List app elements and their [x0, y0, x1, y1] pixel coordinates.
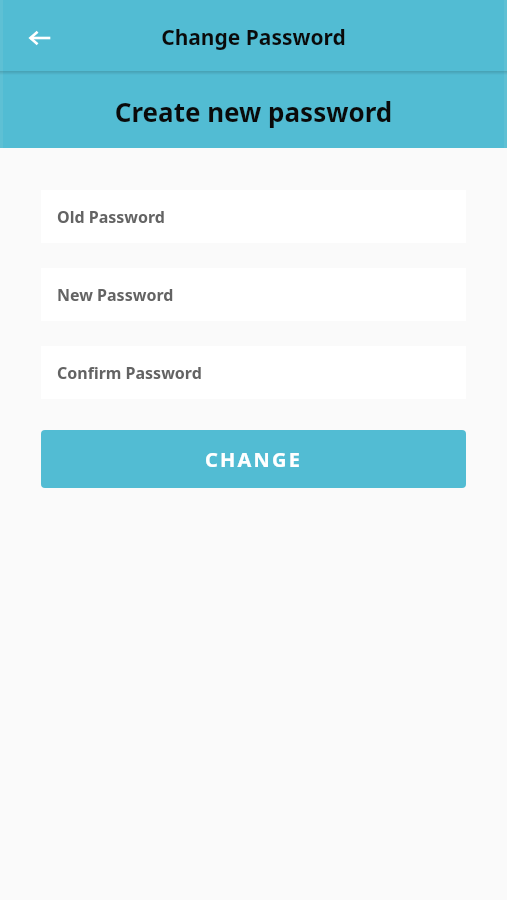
button[interactable]: CHANGE: [41, 430, 466, 488]
staticText: Change Password: [0, 23, 507, 52]
button[interactable]: Back: [17, 15, 63, 61]
staticText: Old Password: [57, 206, 165, 228]
staticText: New Password: [57, 284, 174, 306]
button[interactable]: Confirm Password: [41, 346, 466, 399]
staticText: CHANGE: [205, 446, 303, 473]
button[interactable]: Old Password: [41, 190, 466, 243]
staticText: Create new password: [0, 94, 507, 129]
staticText: Confirm Password: [57, 362, 202, 384]
button[interactable]: New Password: [41, 268, 466, 321]
